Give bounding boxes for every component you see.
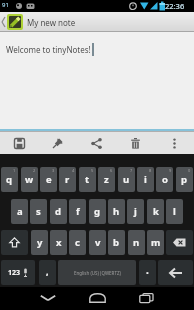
button[interactable] bbox=[0, 132, 38, 154]
staticText: 4 bbox=[72, 168, 75, 173]
button[interactable] bbox=[77, 132, 116, 154]
staticText: t bbox=[85, 173, 90, 186]
button[interactable]: r bbox=[59, 167, 76, 192]
staticText: k bbox=[153, 205, 159, 218]
staticText: s bbox=[36, 205, 41, 218]
staticText: x bbox=[56, 236, 62, 249]
button[interactable]: f bbox=[69, 199, 86, 224]
button[interactable] bbox=[1, 230, 28, 255]
staticText: a bbox=[17, 205, 23, 218]
staticText: e bbox=[46, 173, 52, 186]
button[interactable]: n bbox=[128, 230, 145, 255]
staticText: r bbox=[65, 173, 70, 186]
staticText: English (US) (QWERTZ) bbox=[74, 270, 121, 276]
staticText: m bbox=[151, 236, 161, 249]
button[interactable]: v bbox=[89, 230, 106, 255]
staticText: 2 bbox=[33, 168, 36, 173]
button[interactable]: i bbox=[137, 167, 154, 192]
staticText: 0 bbox=[188, 168, 191, 173]
staticText: g bbox=[94, 205, 101, 218]
staticText: My new note bbox=[27, 17, 76, 28]
staticText: y bbox=[37, 236, 43, 249]
staticText: 6 bbox=[110, 168, 113, 173]
button[interactable]: 123 bbox=[1, 260, 35, 285]
staticText: . bbox=[146, 263, 149, 277]
staticText: j bbox=[134, 205, 137, 218]
button[interactable]: m bbox=[147, 230, 164, 255]
button[interactable]: e bbox=[40, 167, 57, 192]
button[interactable]: c bbox=[69, 230, 86, 255]
staticText: q bbox=[6, 173, 13, 186]
button[interactable]: g bbox=[89, 199, 106, 224]
button[interactable] bbox=[166, 230, 193, 255]
button[interactable] bbox=[136, 288, 156, 307]
staticText: l bbox=[173, 205, 176, 218]
staticText: f bbox=[76, 205, 80, 218]
button[interactable]: My new note bbox=[0, 12, 194, 32]
button[interactable]: s bbox=[30, 199, 47, 224]
staticText: 22:36 bbox=[165, 1, 185, 11]
button[interactable]: Welcome to tinyNotes! bbox=[0, 32, 194, 131]
button[interactable]: p bbox=[176, 167, 193, 192]
button[interactable]: k bbox=[147, 199, 164, 224]
button[interactable]: y bbox=[31, 230, 48, 255]
button[interactable]: q bbox=[1, 167, 18, 192]
staticText: d bbox=[55, 205, 62, 218]
button[interactable]: b bbox=[108, 230, 125, 255]
button[interactable] bbox=[116, 132, 155, 154]
button[interactable]: d bbox=[50, 199, 67, 224]
staticText: 1 bbox=[13, 168, 16, 173]
button[interactable]: x bbox=[50, 230, 67, 255]
staticText: 7 bbox=[130, 168, 133, 173]
button[interactable] bbox=[87, 288, 107, 307]
staticText: n bbox=[133, 236, 140, 249]
button[interactable]: j bbox=[127, 199, 144, 224]
button[interactable]: . bbox=[139, 260, 156, 285]
staticText: 3 bbox=[52, 168, 55, 173]
button[interactable] bbox=[38, 288, 58, 307]
button[interactable]: a bbox=[11, 199, 28, 224]
staticText: z bbox=[104, 173, 109, 186]
staticText: 91 bbox=[2, 1, 9, 9]
button[interactable]: u bbox=[118, 167, 135, 192]
button[interactable]: w bbox=[21, 167, 38, 192]
button[interactable] bbox=[158, 260, 193, 285]
staticText: b bbox=[113, 236, 120, 249]
staticText: 5 bbox=[91, 168, 94, 173]
staticText: o bbox=[162, 173, 168, 186]
staticText: c bbox=[75, 236, 80, 249]
button[interactable]: z bbox=[98, 167, 115, 192]
staticText: 9 bbox=[169, 168, 172, 173]
button[interactable]: o bbox=[156, 167, 173, 192]
button[interactable]: t bbox=[79, 167, 96, 192]
staticText: v bbox=[95, 236, 101, 249]
button[interactable]: l bbox=[166, 199, 183, 224]
button[interactable]: h bbox=[108, 199, 125, 224]
staticText: w bbox=[25, 173, 34, 186]
staticText: , bbox=[46, 265, 49, 277]
button[interactable] bbox=[155, 132, 194, 154]
staticText: h bbox=[113, 205, 120, 218]
button[interactable]: English (US) (QWERTZ) bbox=[58, 260, 136, 285]
staticText: Welcome to tinyNotes! bbox=[6, 44, 91, 55]
staticText: i bbox=[144, 173, 147, 186]
staticText: 8 bbox=[149, 168, 152, 173]
staticText: 123 bbox=[8, 268, 21, 278]
staticText: u bbox=[123, 173, 130, 186]
staticText: p bbox=[181, 173, 188, 186]
button[interactable]: , bbox=[39, 260, 56, 285]
button[interactable] bbox=[38, 132, 77, 154]
